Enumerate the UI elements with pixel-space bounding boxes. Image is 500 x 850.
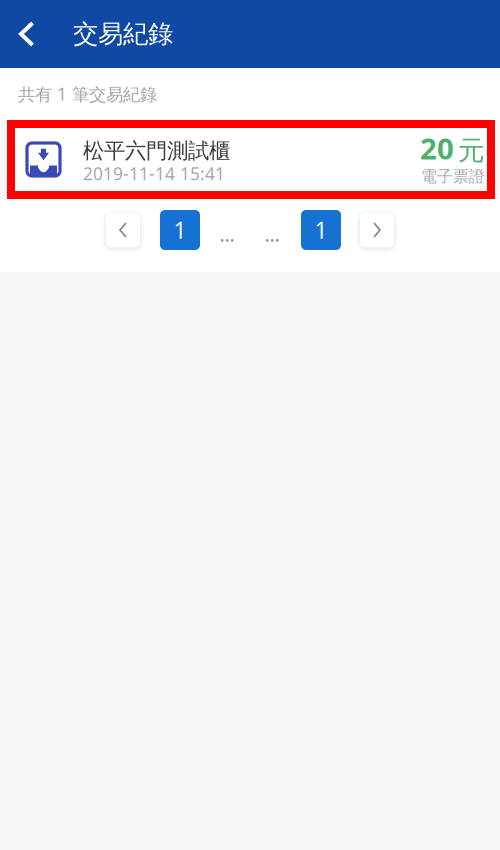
staticText: 1 [173, 215, 186, 245]
staticText: 共有 1 筆交易紀錄 [18, 82, 157, 105]
staticText: 松平六門測試櫃 [83, 138, 230, 164]
button[interactable]: 1 [160, 210, 200, 250]
staticText: 2019-11-14 15:41 [83, 162, 225, 185]
button[interactable]: Previous page [106, 212, 140, 247]
button[interactable]: Next page [360, 212, 394, 247]
staticText: 1 [314, 215, 327, 245]
staticText: 交易紀錄 [73, 18, 173, 49]
staticText: 電子票證 [421, 167, 485, 186]
button[interactable]: 松平六門測試櫃 [7, 120, 495, 199]
staticText: 20 [420, 129, 454, 168]
staticText: ... [219, 221, 234, 247]
button[interactable]: Back [0, 0, 53, 68]
staticText: 元 [458, 134, 485, 167]
staticText: ... [264, 221, 279, 247]
button[interactable]: 1 [301, 210, 341, 250]
